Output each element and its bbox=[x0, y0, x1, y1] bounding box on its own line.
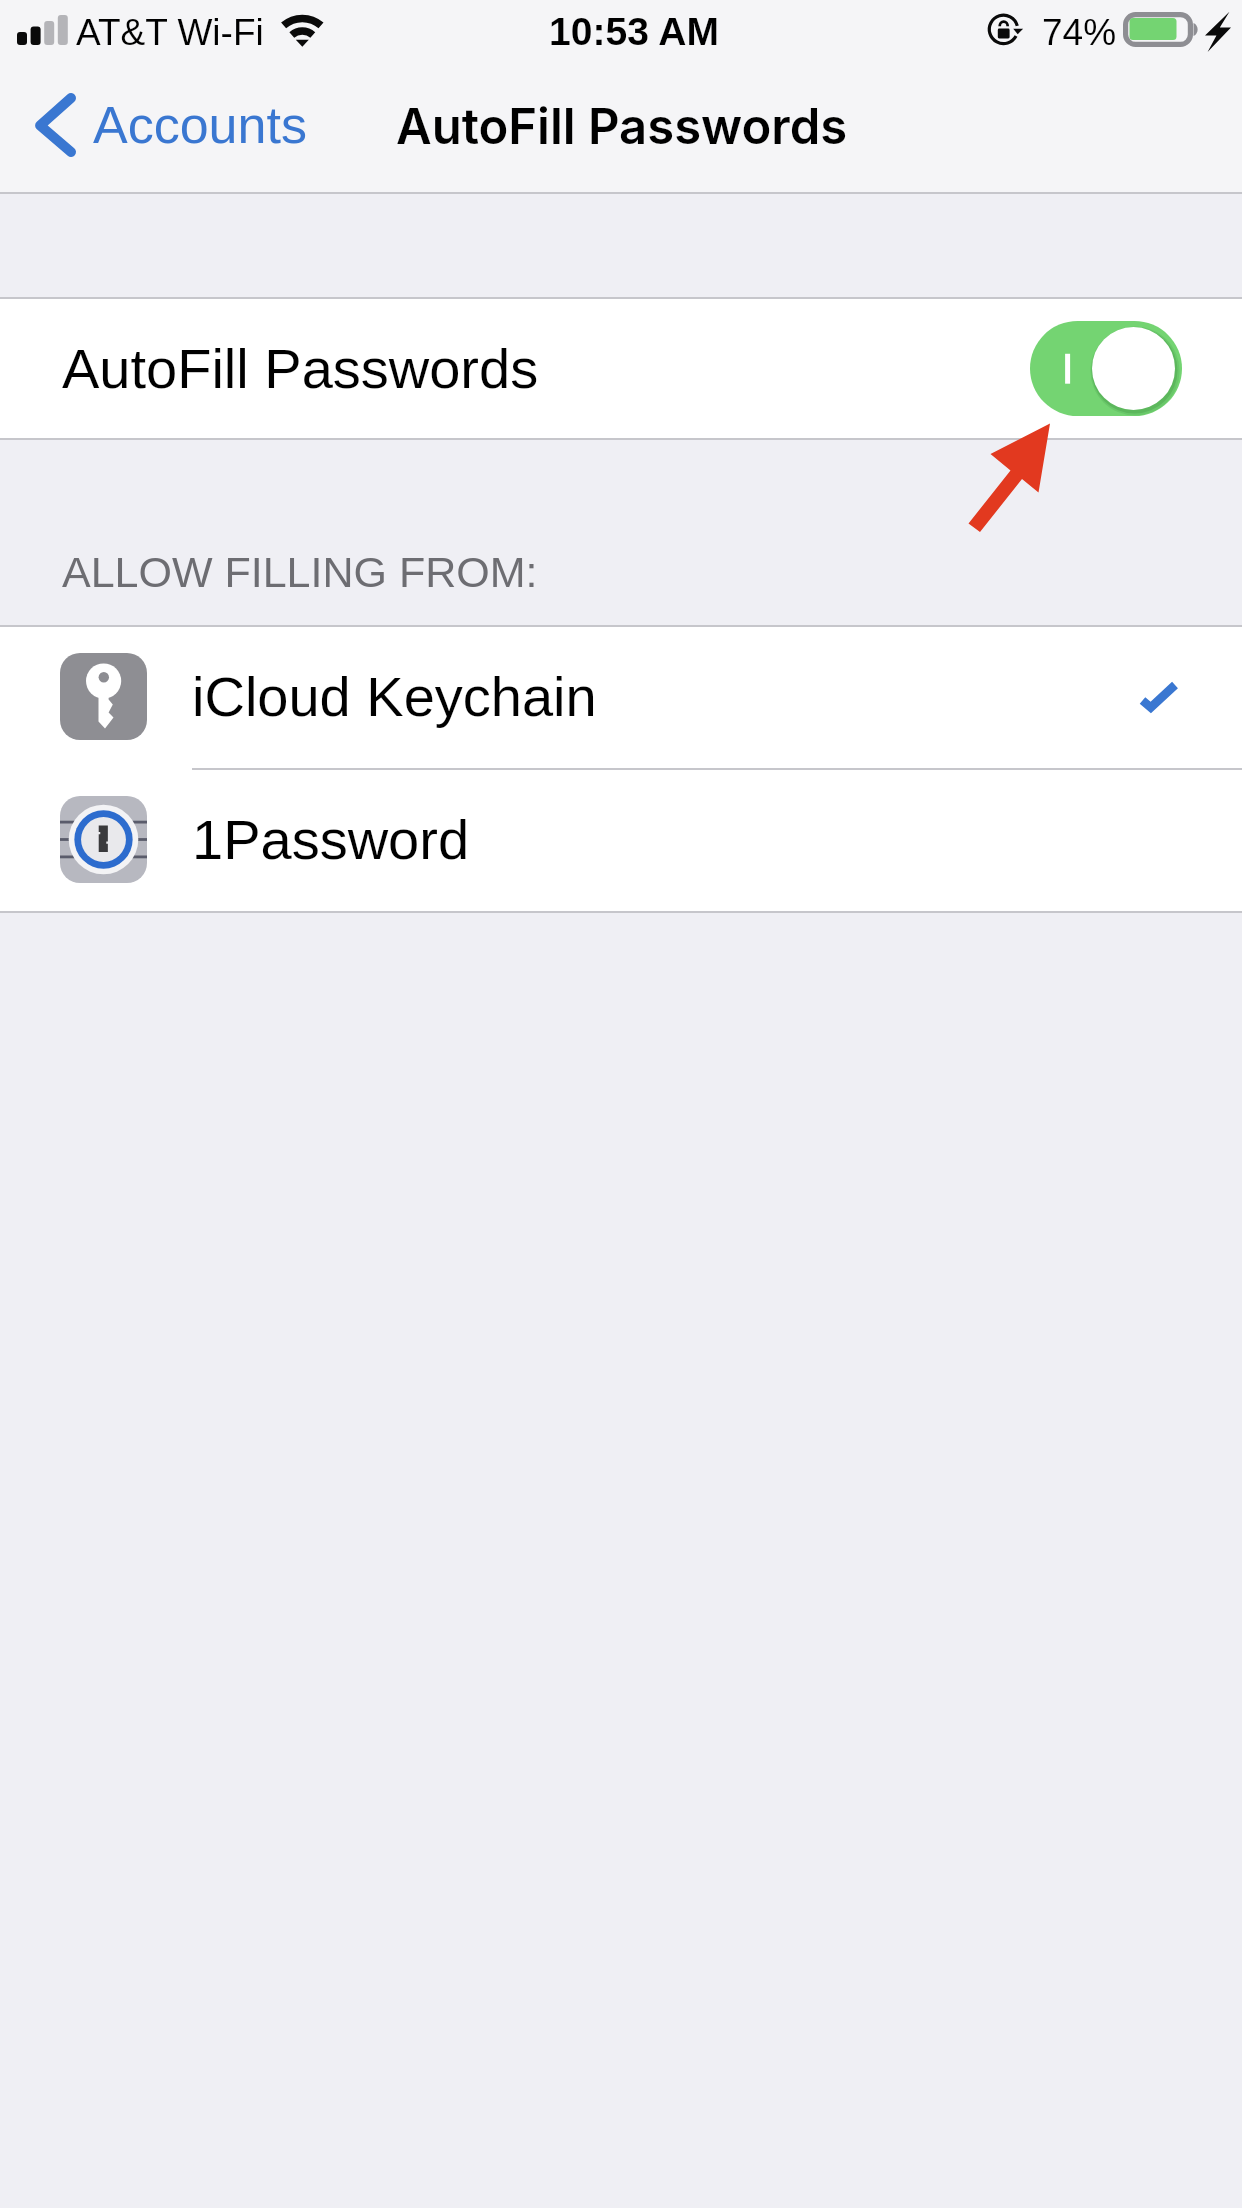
staticText: ALLOW FILLING FROM: bbox=[62, 548, 538, 596]
staticText: AutoFill Passwords bbox=[396, 97, 848, 156]
staticText: 10:53 AM bbox=[13, 10, 1242, 54]
staticText: iCloud Keychain bbox=[192, 665, 597, 728]
button[interactable]: Accounts bbox=[0, 94, 307, 156]
staticText: 1Password bbox=[192, 808, 470, 871]
button[interactable]: iCloud Keychain bbox=[0, 625, 1242, 768]
staticText: 74% bbox=[1042, 12, 1117, 53]
staticText: AutoFill Passwords bbox=[62, 337, 539, 400]
button[interactable]: 1Password bbox=[0, 768, 1242, 911]
button[interactable]: AutoFill Passwords toggle bbox=[1030, 321, 1182, 416]
staticText: Accounts bbox=[93, 96, 307, 154]
staticText: AT&T Wi-Fi bbox=[76, 12, 264, 53]
button[interactable]: AutoFill Passwords bbox=[0, 297, 1242, 440]
